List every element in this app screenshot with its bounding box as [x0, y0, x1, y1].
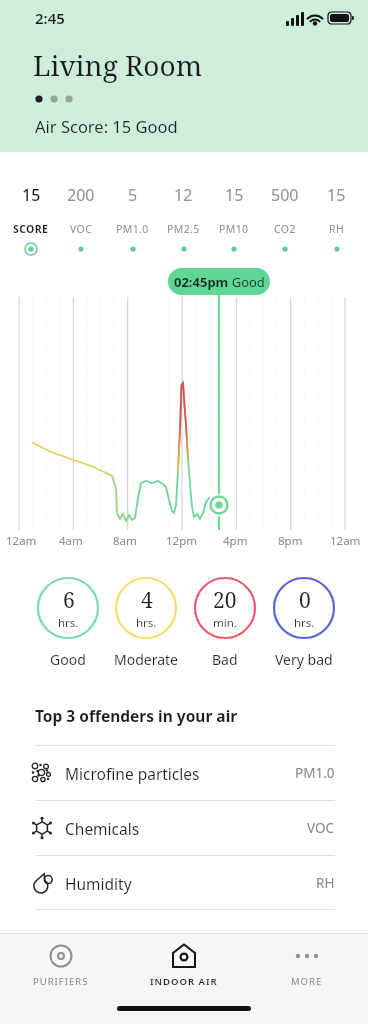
staticText: Bad	[212, 650, 238, 669]
staticText: CO2	[274, 222, 296, 236]
staticText: 4pm	[223, 533, 248, 549]
staticText: Moderate	[114, 650, 178, 669]
staticText: Air Score: 15 Good	[35, 115, 178, 137]
staticText: 200	[67, 184, 95, 206]
staticText: 4	[141, 586, 153, 615]
staticText: 15	[22, 184, 41, 206]
staticText: Chemicals	[65, 818, 140, 839]
button[interactable]: 500	[259, 184, 311, 262]
staticText: 15	[327, 184, 346, 206]
staticText: 500	[271, 184, 299, 206]
staticText: 12am	[6, 533, 37, 549]
staticText: 6	[63, 586, 75, 615]
button[interactable]: 4	[115, 577, 177, 639]
button[interactable]: MORE	[259, 943, 355, 995]
staticText: 12am	[330, 533, 361, 549]
button[interactable]: INDOOR AIR	[136, 943, 232, 995]
staticText: PM10	[219, 222, 249, 236]
staticText: PM1.0	[116, 222, 149, 236]
staticText: 5	[128, 184, 138, 206]
button[interactable]: 200	[55, 184, 107, 262]
staticText: 8am	[113, 533, 137, 549]
button[interactable]: Microfine particles	[0, 746, 368, 800]
button[interactable]: Chemicals	[0, 801, 368, 855]
button[interactable]: 0	[273, 577, 335, 639]
staticText: 12pm	[166, 533, 197, 549]
staticText: 4am	[59, 533, 83, 549]
staticText: VOC	[70, 222, 93, 236]
staticText: RH	[316, 874, 335, 892]
button[interactable]: PURIFIERS	[13, 943, 109, 995]
staticText: 15	[225, 184, 244, 206]
staticText: hrs.	[136, 615, 157, 631]
staticText: 0	[299, 586, 311, 615]
button[interactable]: 6	[37, 577, 99, 639]
staticText: min.	[213, 615, 237, 631]
staticText: PURIFIERS	[33, 975, 89, 988]
staticText: 8pm	[278, 533, 303, 549]
staticText: hrs.	[294, 615, 315, 631]
staticText: Microfine particles	[65, 763, 200, 784]
staticText: Humidity	[65, 873, 132, 894]
staticText: INDOOR AIR	[150, 975, 218, 988]
staticText: 02:45pm Good	[174, 273, 265, 291]
staticText: Top 3 offenders in your air	[35, 705, 238, 726]
staticText: VOC	[307, 819, 335, 837]
staticText: Good	[50, 650, 86, 669]
button[interactable]: Humidity	[0, 856, 368, 910]
button[interactable]: 15	[5, 184, 57, 262]
staticText: Very bad	[275, 650, 333, 669]
staticText: PM1.0	[295, 764, 335, 782]
staticText: RH	[329, 222, 345, 236]
button[interactable]: 5	[106, 184, 158, 262]
staticText: SCORE	[13, 222, 49, 236]
button[interactable]: 12	[157, 184, 209, 262]
staticText: 12	[174, 184, 193, 206]
button[interactable]: 02:45pm Good	[168, 268, 270, 295]
button[interactable]: 15	[208, 184, 260, 262]
staticText: PM2.5	[167, 222, 200, 236]
staticText: MORE	[291, 975, 323, 988]
staticText: Living Room	[33, 46, 203, 84]
button[interactable]: 20	[194, 577, 256, 639]
staticText: hrs.	[58, 615, 79, 631]
staticText: 2:45	[35, 8, 65, 28]
staticText: 20	[213, 586, 237, 615]
button[interactable]: 15	[310, 184, 362, 262]
